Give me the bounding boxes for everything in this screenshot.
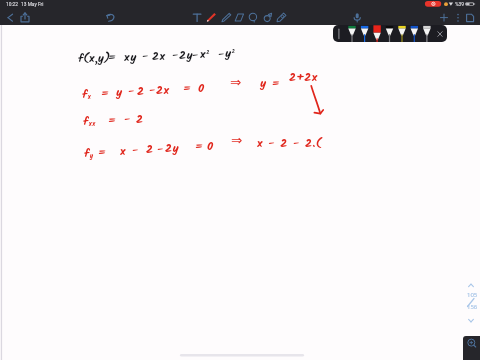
staticText: 2x [152,47,166,66]
staticText: 105 [467,291,478,299]
staticText: - [149,81,156,100]
staticText: = [108,48,117,67]
staticText: - [132,141,139,160]
staticText: x [120,142,127,161]
staticText: 13 May Fri [21,2,44,8]
button[interactable] [333,25,447,42]
staticText: fy [84,144,94,163]
staticText: - [128,82,135,101]
staticText: 2y [165,139,180,158]
staticText: 2 [137,82,145,101]
staticText: - [192,46,199,65]
button[interactable]: Eraser [232,10,246,25]
staticText: = [98,143,107,162]
staticText: y = [260,74,281,93]
staticText: = [195,137,204,156]
button[interactable]: Undo [103,10,117,25]
button[interactable]: Back [3,10,17,25]
staticText: - [142,47,149,66]
button[interactable]: Zoom [463,336,480,360]
staticText: - [218,45,225,64]
staticText: = [183,79,192,98]
staticText: 156 [467,303,478,311]
staticText: = [101,84,110,103]
button[interactable]: Page view [463,10,477,25]
staticText: - [157,140,164,159]
staticText: = [108,111,117,130]
staticText: x - 2 - 2.( [257,134,322,153]
button[interactable]: More options [451,10,465,25]
button[interactable]: Pen [204,10,218,25]
staticText: 0 [198,79,205,98]
button[interactable]: Share [18,10,32,25]
button[interactable]: Text tool [190,10,204,25]
staticText: 0 [207,137,214,156]
button[interactable]: Add [437,10,451,25]
staticText: %39 [455,2,464,8]
button[interactable]: Select [246,10,260,25]
staticText: 2 [136,110,144,129]
button[interactable]: Shapes [261,10,275,25]
staticText: f(x,y) [78,49,111,68]
staticText: 2x [156,81,170,100]
staticText: 2 [146,140,154,159]
button[interactable]: Brush [274,10,288,25]
staticText: - [124,110,131,129]
staticText: ⇒ [231,132,243,148]
staticText: fx [82,85,92,104]
staticText: 2+2x [289,68,318,87]
staticText: 10:22 [6,2,19,8]
staticText: x2 [200,45,210,64]
staticText: xy [124,48,137,67]
button[interactable]: Highlighter [219,10,233,25]
staticText: 2y [179,46,194,65]
button[interactable]: Voice recording [350,10,364,25]
staticText: fxx [83,112,96,131]
staticText: - [172,46,179,65]
staticText: ⇒ [230,74,242,90]
staticText: y2 [225,44,236,63]
staticText: y [116,83,123,102]
